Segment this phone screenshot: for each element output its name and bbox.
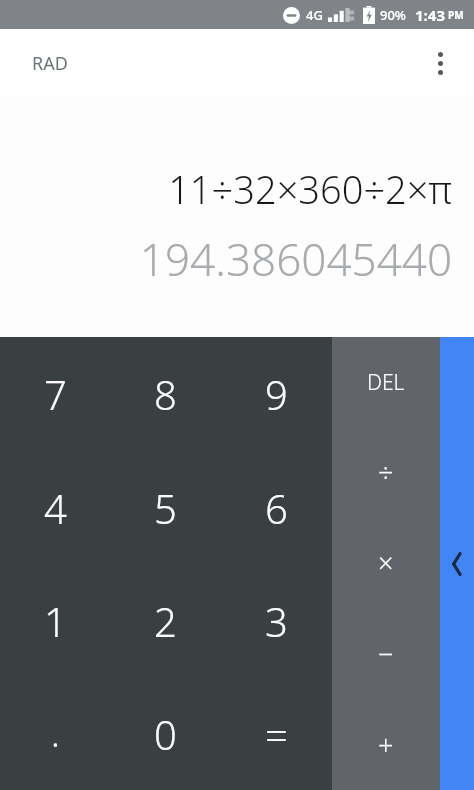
button[interactable]: 4 xyxy=(0,451,110,564)
button[interactable]: 5 xyxy=(110,451,221,564)
staticText: 9 xyxy=(265,367,288,421)
staticText: = xyxy=(265,707,288,761)
staticText: PM xyxy=(448,8,464,22)
button[interactable]: . xyxy=(0,677,110,790)
button[interactable]: 1 xyxy=(0,564,110,677)
button[interactable]: × xyxy=(332,517,440,608)
button[interactable]: − xyxy=(332,608,440,699)
staticText: + xyxy=(378,726,394,763)
staticText: 5 xyxy=(154,481,177,535)
staticText: 6 xyxy=(265,481,288,535)
staticText: × xyxy=(378,544,394,581)
staticText: 8 xyxy=(154,367,177,421)
button[interactable]: 3 xyxy=(221,564,332,677)
staticText: 3 xyxy=(265,594,288,648)
button[interactable]: 6 xyxy=(221,451,332,564)
staticText: 1 xyxy=(44,594,67,648)
button[interactable]: 9 xyxy=(221,337,332,451)
button[interactable]: 2 xyxy=(110,564,221,677)
staticText: 90% xyxy=(380,6,406,24)
button[interactable]: = xyxy=(221,677,332,790)
button[interactable]: DEL xyxy=(332,337,440,427)
button[interactable]: ÷ xyxy=(332,427,440,517)
staticText: 1:43 xyxy=(415,5,445,25)
staticText: 2 xyxy=(154,594,177,648)
staticText: 11÷32×360÷2×π xyxy=(168,163,452,215)
button[interactable]: RAD xyxy=(20,43,80,84)
staticText: 0 xyxy=(154,707,177,761)
staticText: . xyxy=(51,709,60,758)
staticText: 4G xyxy=(306,6,323,24)
button[interactable]: Open advanced pad xyxy=(440,337,474,790)
button[interactable]: 0 xyxy=(110,677,221,790)
staticText: 4 xyxy=(44,481,67,535)
staticText: RAD xyxy=(32,51,68,76)
button[interactable]: + xyxy=(332,699,440,790)
staticText: ÷ xyxy=(378,454,394,491)
button[interactable]: More options xyxy=(418,41,462,85)
staticText: 7 xyxy=(44,367,67,421)
staticText: − xyxy=(378,635,394,672)
staticText: DEL xyxy=(367,368,405,397)
staticText: 194.386045440 xyxy=(139,229,452,289)
button[interactable]: 7 xyxy=(0,337,110,451)
button[interactable]: 8 xyxy=(110,337,221,451)
